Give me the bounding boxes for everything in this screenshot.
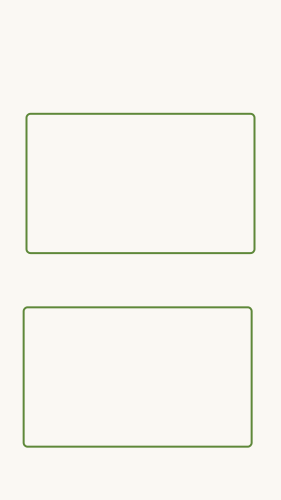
button[interactable]: Card 1 — [26, 114, 254, 253]
button[interactable]: Card 2 — [24, 307, 252, 447]
